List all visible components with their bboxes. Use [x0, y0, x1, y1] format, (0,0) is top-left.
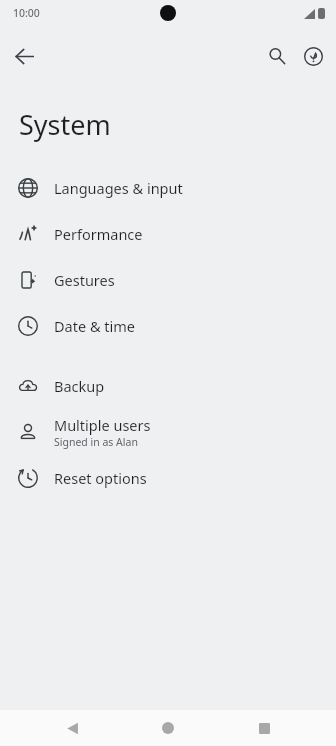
button[interactable]: Home [144, 710, 192, 746]
staticText: Backup [54, 376, 105, 396]
button[interactable]: Back [6, 38, 42, 74]
button[interactable]: Multiple users [0, 409, 336, 455]
staticText: Signed in as Alan [54, 435, 138, 449]
staticText: Date & time [54, 316, 135, 336]
button[interactable]: Reset options [0, 455, 336, 501]
staticText: Languages & input [54, 178, 183, 198]
button[interactable]: Help [295, 38, 331, 74]
staticText: 10:00 [13, 6, 40, 20]
button[interactable]: Back [48, 710, 96, 746]
staticText: Performance [54, 224, 143, 244]
button[interactable]: Languages & input [0, 165, 336, 211]
button[interactable]: Gestures [0, 257, 336, 303]
staticText: System [19, 106, 111, 143]
staticText: Multiple users [54, 415, 151, 435]
button[interactable]: Date & time [0, 303, 336, 349]
button[interactable]: Search [259, 38, 295, 74]
button[interactable]: Backup [0, 363, 336, 409]
staticText: Gestures [54, 270, 115, 290]
staticText: Reset options [54, 468, 147, 488]
button[interactable]: Recent apps [240, 710, 288, 746]
button[interactable]: Performance [0, 211, 336, 257]
